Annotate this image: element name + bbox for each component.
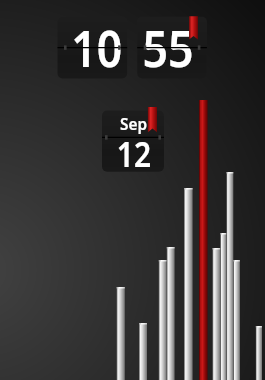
button[interactable]: [0, 0, 265, 380]
